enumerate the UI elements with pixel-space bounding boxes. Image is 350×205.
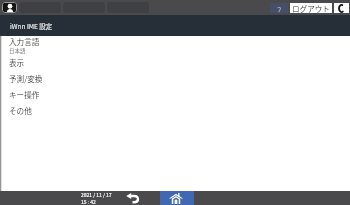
staticText: 15 : 42 bbox=[81, 198, 96, 205]
button[interactable]: 入力言語 bbox=[0, 36, 350, 54]
button[interactable]: Back bbox=[116, 191, 160, 205]
button[interactable]: その他 bbox=[0, 102, 350, 118]
button[interactable]: ログアウト bbox=[290, 3, 332, 13]
staticText: ? bbox=[277, 3, 282, 13]
button[interactable]: キー操作 bbox=[0, 86, 350, 102]
button[interactable]: Help bbox=[270, 3, 288, 13]
button[interactable]: Account bbox=[2, 2, 17, 13]
staticText: 日本語 bbox=[9, 47, 26, 54]
button[interactable]: 表示 bbox=[0, 54, 350, 70]
staticText: 入力言語 bbox=[9, 36, 40, 47]
staticText: 予測/変換 bbox=[9, 73, 43, 84]
staticText: iWnn IME 設定 bbox=[10, 21, 53, 30]
staticText: キー操作 bbox=[9, 89, 40, 100]
staticText: その他 bbox=[9, 105, 32, 116]
staticText: 表示 bbox=[9, 57, 25, 68]
staticText: ログアウト bbox=[292, 3, 330, 13]
staticText: 2021 / 11 / 17 bbox=[81, 191, 112, 198]
button[interactable]: Dark mode bbox=[334, 3, 349, 13]
button[interactable]: Home bbox=[160, 191, 194, 205]
button[interactable]: 予測/変換 bbox=[0, 70, 350, 86]
